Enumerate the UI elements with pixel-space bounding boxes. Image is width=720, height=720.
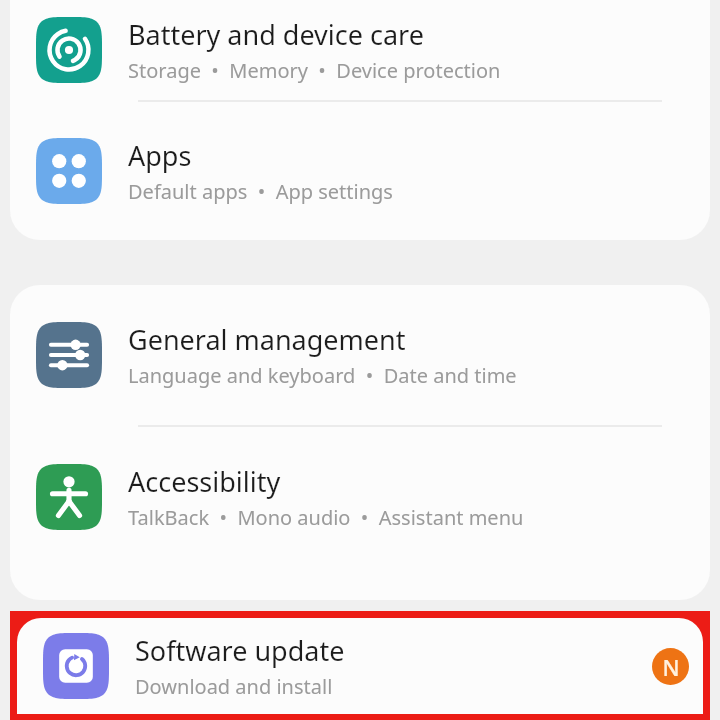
button[interactable]: Battery and device care — [10, 0, 710, 100]
staticText: Language and keyboard • Date and time — [128, 362, 517, 389]
staticText: Apps — [128, 137, 192, 174]
staticText: General management — [128, 321, 406, 358]
staticText: Default apps • App settings — [128, 178, 393, 205]
button[interactable]: Software update — [17, 618, 703, 714]
staticText: Battery and device care — [128, 16, 424, 53]
staticText: Storage • Memory • Device protection — [128, 57, 501, 84]
other: New software update available — [652, 648, 689, 685]
staticText: TalkBack • Mono audio • Assistant menu — [128, 504, 524, 531]
button[interactable]: General management — [10, 285, 710, 425]
staticText: Accessibility — [128, 463, 281, 500]
button[interactable]: Accessibility — [10, 427, 710, 567]
staticText: N — [662, 652, 680, 682]
button[interactable]: Apps — [10, 102, 710, 240]
staticText: Software update — [135, 632, 345, 669]
staticText: Download and install — [135, 673, 333, 700]
